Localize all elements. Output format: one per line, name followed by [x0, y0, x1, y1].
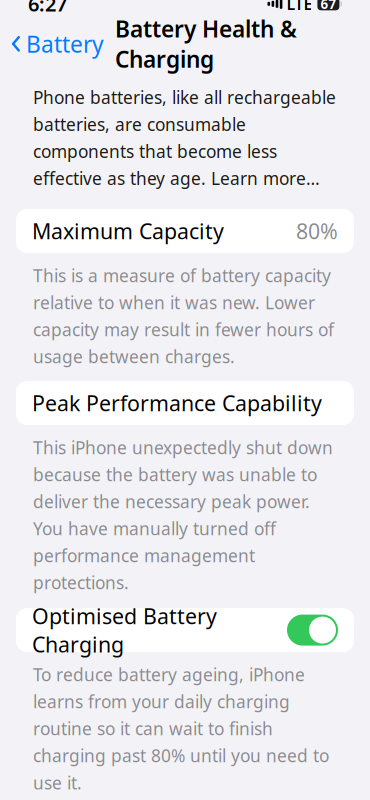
staticText: This iPhone unexpectedly shut down becau…	[33, 436, 333, 594]
staticText: To reduce battery ageing, iPhone learns …	[33, 663, 329, 794]
staticText: Peak Performance Capability	[32, 389, 322, 417]
staticText: Maximum Capacity	[32, 217, 224, 245]
staticText: 6:27	[28, 0, 67, 17]
button[interactable]: Optimised Battery Charging	[16, 608, 354, 652]
button[interactable]: Peak Performance Capability	[16, 381, 354, 425]
staticText: 80%	[296, 217, 338, 245]
staticText: Optimised Battery Charging	[32, 602, 217, 658]
staticText: Battery Health & Charging	[115, 14, 297, 74]
button[interactable]: Maximum Capacity	[16, 209, 354, 253]
button[interactable]: Battery	[0, 23, 104, 65]
staticText: This is a measure of battery capacity re…	[33, 264, 334, 368]
staticText: Phone batteries, like all rechargeable b…	[33, 86, 336, 190]
staticText: Battery	[26, 29, 104, 59]
staticText: LTE	[286, 0, 312, 14]
staticText: 67	[320, 0, 336, 13]
